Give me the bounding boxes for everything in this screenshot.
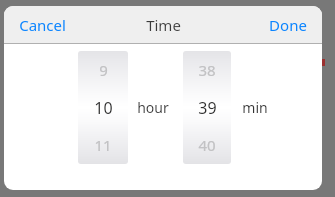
staticText: 10 (94, 97, 113, 119)
button[interactable]: Minute picker, 39 (183, 51, 231, 164)
staticText: min (242, 98, 268, 117)
staticText: 38 (198, 60, 216, 80)
staticText: 11 (94, 135, 112, 155)
staticText: 40 (198, 135, 216, 155)
staticText: hour (137, 98, 169, 117)
button[interactable]: Hour picker, 10 (78, 51, 128, 164)
staticText: Time (146, 15, 181, 35)
staticText: Cancel (19, 15, 66, 35)
staticText: 9 (99, 60, 108, 80)
staticText: 39 (198, 97, 217, 119)
button[interactable]: Done (261, 8, 315, 42)
button[interactable]: Cancel (11, 8, 74, 42)
staticText: Done (269, 15, 307, 35)
